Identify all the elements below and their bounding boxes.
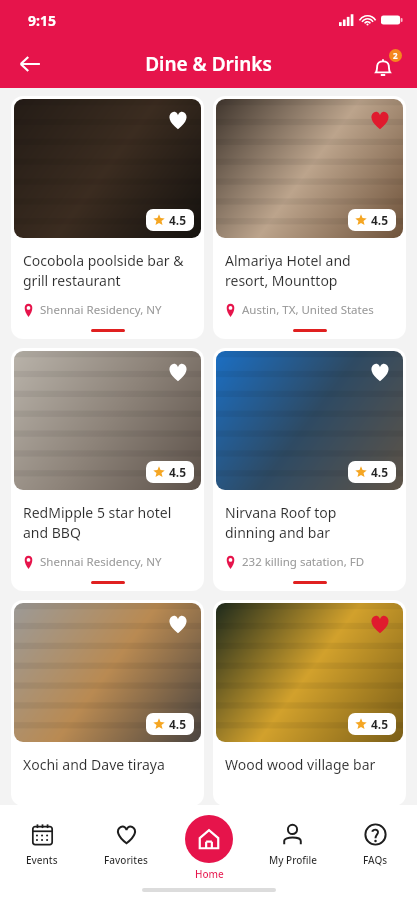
staticText: Wood wood village bar <box>225 755 376 774</box>
staticText: 2 <box>393 50 398 61</box>
staticText: Xochi and Dave tiraya <box>23 755 165 774</box>
staticText: 4.5 <box>169 716 187 732</box>
button[interactable]: Add to favorites <box>163 357 193 387</box>
button[interactable]: Notifications <box>365 42 409 86</box>
button[interactable]: Remove from favorites <box>365 609 395 639</box>
button[interactable]: Add to favorites <box>11 600 204 806</box>
staticText: Almariya Hotel and resort, Mounttop <box>225 251 351 291</box>
button[interactable]: Add to favorites <box>163 105 193 135</box>
staticText: Shennai Residency, NY <box>40 302 162 318</box>
staticText: 9:15 <box>28 11 56 30</box>
button[interactable]: FAQs <box>334 805 417 875</box>
button[interactable]: My Profile <box>251 805 334 875</box>
button[interactable]: Add to favorites <box>11 96 204 339</box>
staticText: 4.5 <box>169 464 187 480</box>
staticText: Favorites <box>104 853 148 867</box>
button[interactable]: Remove from favorites <box>213 96 406 339</box>
staticText: FAQs <box>363 853 388 867</box>
staticText: Shennai Residency, NY <box>40 554 162 570</box>
staticText: Home <box>195 867 224 881</box>
staticText: Events <box>26 853 58 867</box>
staticText: 4.5 <box>169 212 187 228</box>
button[interactable]: Remove from favorites <box>213 600 406 806</box>
staticText: Cocobola poolside bar & grill restaurant <box>23 251 184 291</box>
staticText: Austin, TX, United States <box>242 302 374 318</box>
button[interactable]: Back <box>8 42 52 86</box>
staticText: 4.5 <box>371 212 389 228</box>
button[interactable]: Add to favorites <box>163 609 193 639</box>
staticText: 4.5 <box>371 464 389 480</box>
staticText: 4.5 <box>371 716 389 732</box>
button[interactable]: Favorites <box>84 805 168 875</box>
staticText: 232 killing satation, FD <box>242 554 365 570</box>
button[interactable]: Add to favorites <box>11 348 204 591</box>
button[interactable]: Remove from favorites <box>365 105 395 135</box>
button[interactable]: Add to favorites <box>365 357 395 387</box>
button[interactable]: Add to favorites <box>213 348 406 591</box>
button[interactable]: Events <box>0 805 84 875</box>
staticText: RedMipple 5 star hotel and BBQ <box>23 503 172 543</box>
button[interactable]: Home <box>185 815 233 863</box>
staticText: My Profile <box>269 853 317 867</box>
staticText: Dine & Drinks <box>145 51 272 77</box>
staticText: Nirvana Roof top dinning and bar <box>225 503 337 543</box>
